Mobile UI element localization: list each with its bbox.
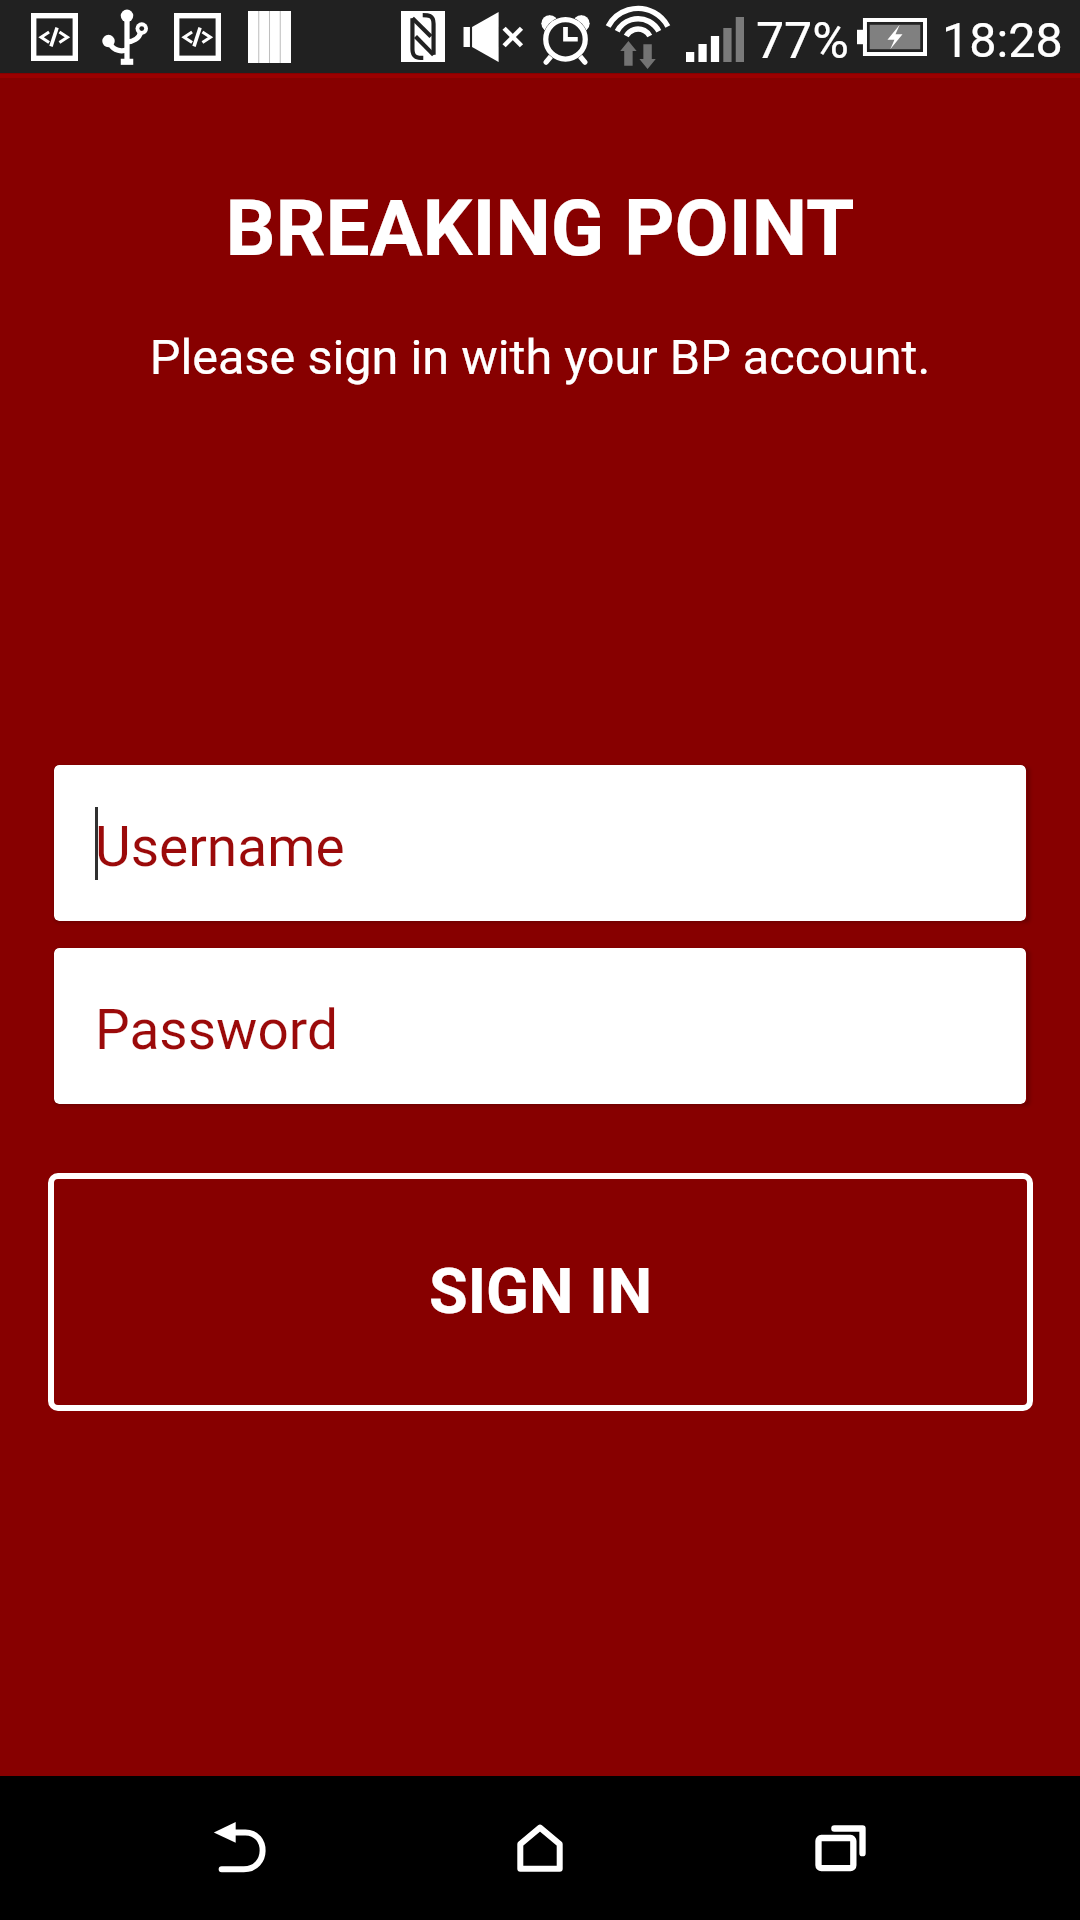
staticText: Password	[95, 998, 338, 1062]
button[interactable]: Username	[54, 765, 1026, 921]
button[interactable]: SIGN IN	[48, 1173, 1033, 1411]
button[interactable]: Back	[120, 1776, 360, 1920]
staticText: Please sign in with your BP account.	[0, 329, 1080, 386]
staticText: 18:28	[942, 12, 1063, 69]
staticText: SIGN IN	[429, 1255, 653, 1329]
button[interactable]: Home	[420, 1776, 660, 1920]
staticText: Username	[95, 815, 345, 879]
button[interactable]: Password	[54, 948, 1026, 1104]
staticText: 77%	[756, 12, 849, 71]
button[interactable]: Recent apps	[720, 1776, 960, 1920]
staticText: BREAKING POINT	[0, 182, 1080, 274]
